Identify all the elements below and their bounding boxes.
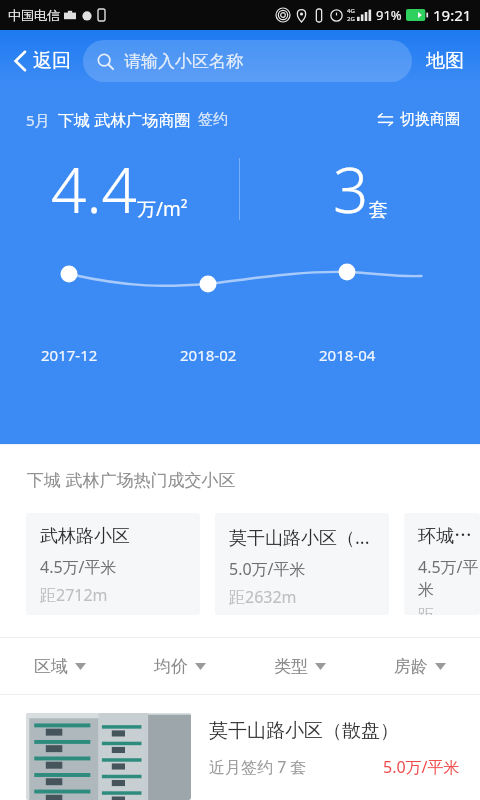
staticText: 4.4 — [51, 147, 137, 231]
staticText: 类型 — [274, 656, 308, 677]
staticText: 武林路小区 — [40, 525, 130, 548]
staticText: 环城北路小区 — [418, 525, 480, 548]
staticText: 2018-02 — [180, 345, 237, 365]
button[interactable]: 请输入小区名称 — [83, 40, 412, 82]
staticText: 距2632m — [229, 586, 297, 608]
staticText: 地图 — [426, 49, 464, 73]
staticText: 下城 武林广场商圈 — [58, 109, 191, 131]
staticText: 请输入小区名称 — [124, 51, 243, 72]
button[interactable]: 环城北路小区 — [404, 513, 480, 615]
button[interactable]: 均价 — [120, 638, 240, 694]
staticText: 下城 武林广场热门成交小区 — [27, 468, 236, 491]
staticText: 套 — [369, 198, 388, 222]
staticText: 91% — [376, 6, 402, 24]
staticText: 签约 — [198, 110, 228, 129]
staticText: 万/m² — [137, 196, 188, 222]
staticText: 2G — [347, 15, 355, 23]
staticText: 距3412m — [418, 606, 480, 615]
staticText: 19:21 — [433, 5, 472, 25]
button[interactable]: 返回 — [10, 43, 75, 79]
staticText: 区域 — [34, 656, 68, 677]
button[interactable]: 类型 — [240, 638, 360, 694]
staticText: 莫干山路小区（... — [229, 525, 370, 550]
staticText: 2017-12 — [41, 345, 98, 365]
staticText: 5月 — [26, 110, 50, 130]
staticText: 近月签约 7 套 — [209, 756, 307, 778]
staticText: 5.0万/平米 — [229, 558, 306, 580]
button[interactable]: 莫干山路小区（散盘） — [0, 705, 480, 800]
button[interactable]: 莫干山路小区（... — [215, 513, 389, 615]
staticText: 切换商圈 — [400, 110, 460, 129]
staticText: 4G — [347, 7, 355, 15]
staticText: 返回 — [33, 49, 71, 73]
staticText: 房龄 — [394, 656, 428, 677]
staticText: 均价 — [154, 656, 188, 677]
button[interactable]: 武林路小区 — [26, 513, 200, 615]
button[interactable]: 切换商圈 — [373, 106, 464, 133]
staticText: 莫干山路小区（散盘） — [209, 719, 399, 743]
button[interactable]: 区域 — [0, 638, 120, 694]
staticText: 2018-04 — [319, 345, 376, 365]
button[interactable]: 房龄 — [360, 638, 480, 694]
staticText: 距2712m — [40, 584, 108, 606]
staticText: 4.5万/平米 — [418, 556, 480, 600]
staticText: 5.0万/平米 — [383, 756, 460, 778]
staticText: 中国电信 — [8, 7, 60, 23]
staticText: 4.5万/平米 — [40, 556, 117, 578]
button[interactable]: 地图 — [420, 41, 470, 81]
staticText: 3 — [333, 147, 369, 231]
